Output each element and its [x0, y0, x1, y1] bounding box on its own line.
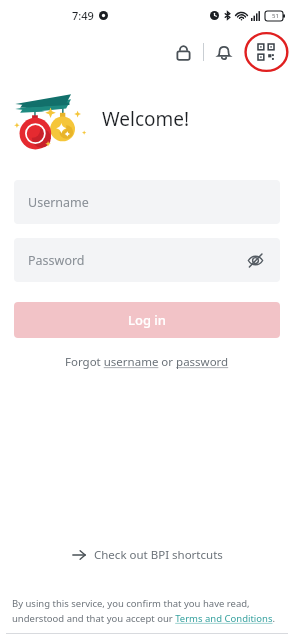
button[interactable]: Log in — [14, 302, 280, 338]
staticText: Password — [28, 252, 85, 269]
button[interactable]: Show password — [244, 249, 266, 271]
staticText: Log in — [128, 311, 166, 329]
staticText: 7:49 — [72, 8, 94, 23]
button[interactable]: Notifications — [204, 32, 244, 72]
staticText: Username — [28, 194, 89, 211]
button[interactable]: Forgot username or password — [61, 350, 233, 374]
button[interactable]: By using this service, you confirm that … — [12, 597, 282, 625]
button[interactable]: Scan QR code — [244, 30, 288, 74]
button[interactable]: Check out BPI shortcuts — [62, 541, 233, 569]
button[interactable]: Password — [14, 238, 280, 282]
staticText: Check out BPI shortcuts — [94, 547, 223, 563]
button[interactable]: Security — [163, 32, 203, 72]
button[interactable]: Username — [14, 180, 280, 224]
staticText: Welcome! — [102, 106, 190, 132]
staticText: 51 — [272, 12, 279, 20]
